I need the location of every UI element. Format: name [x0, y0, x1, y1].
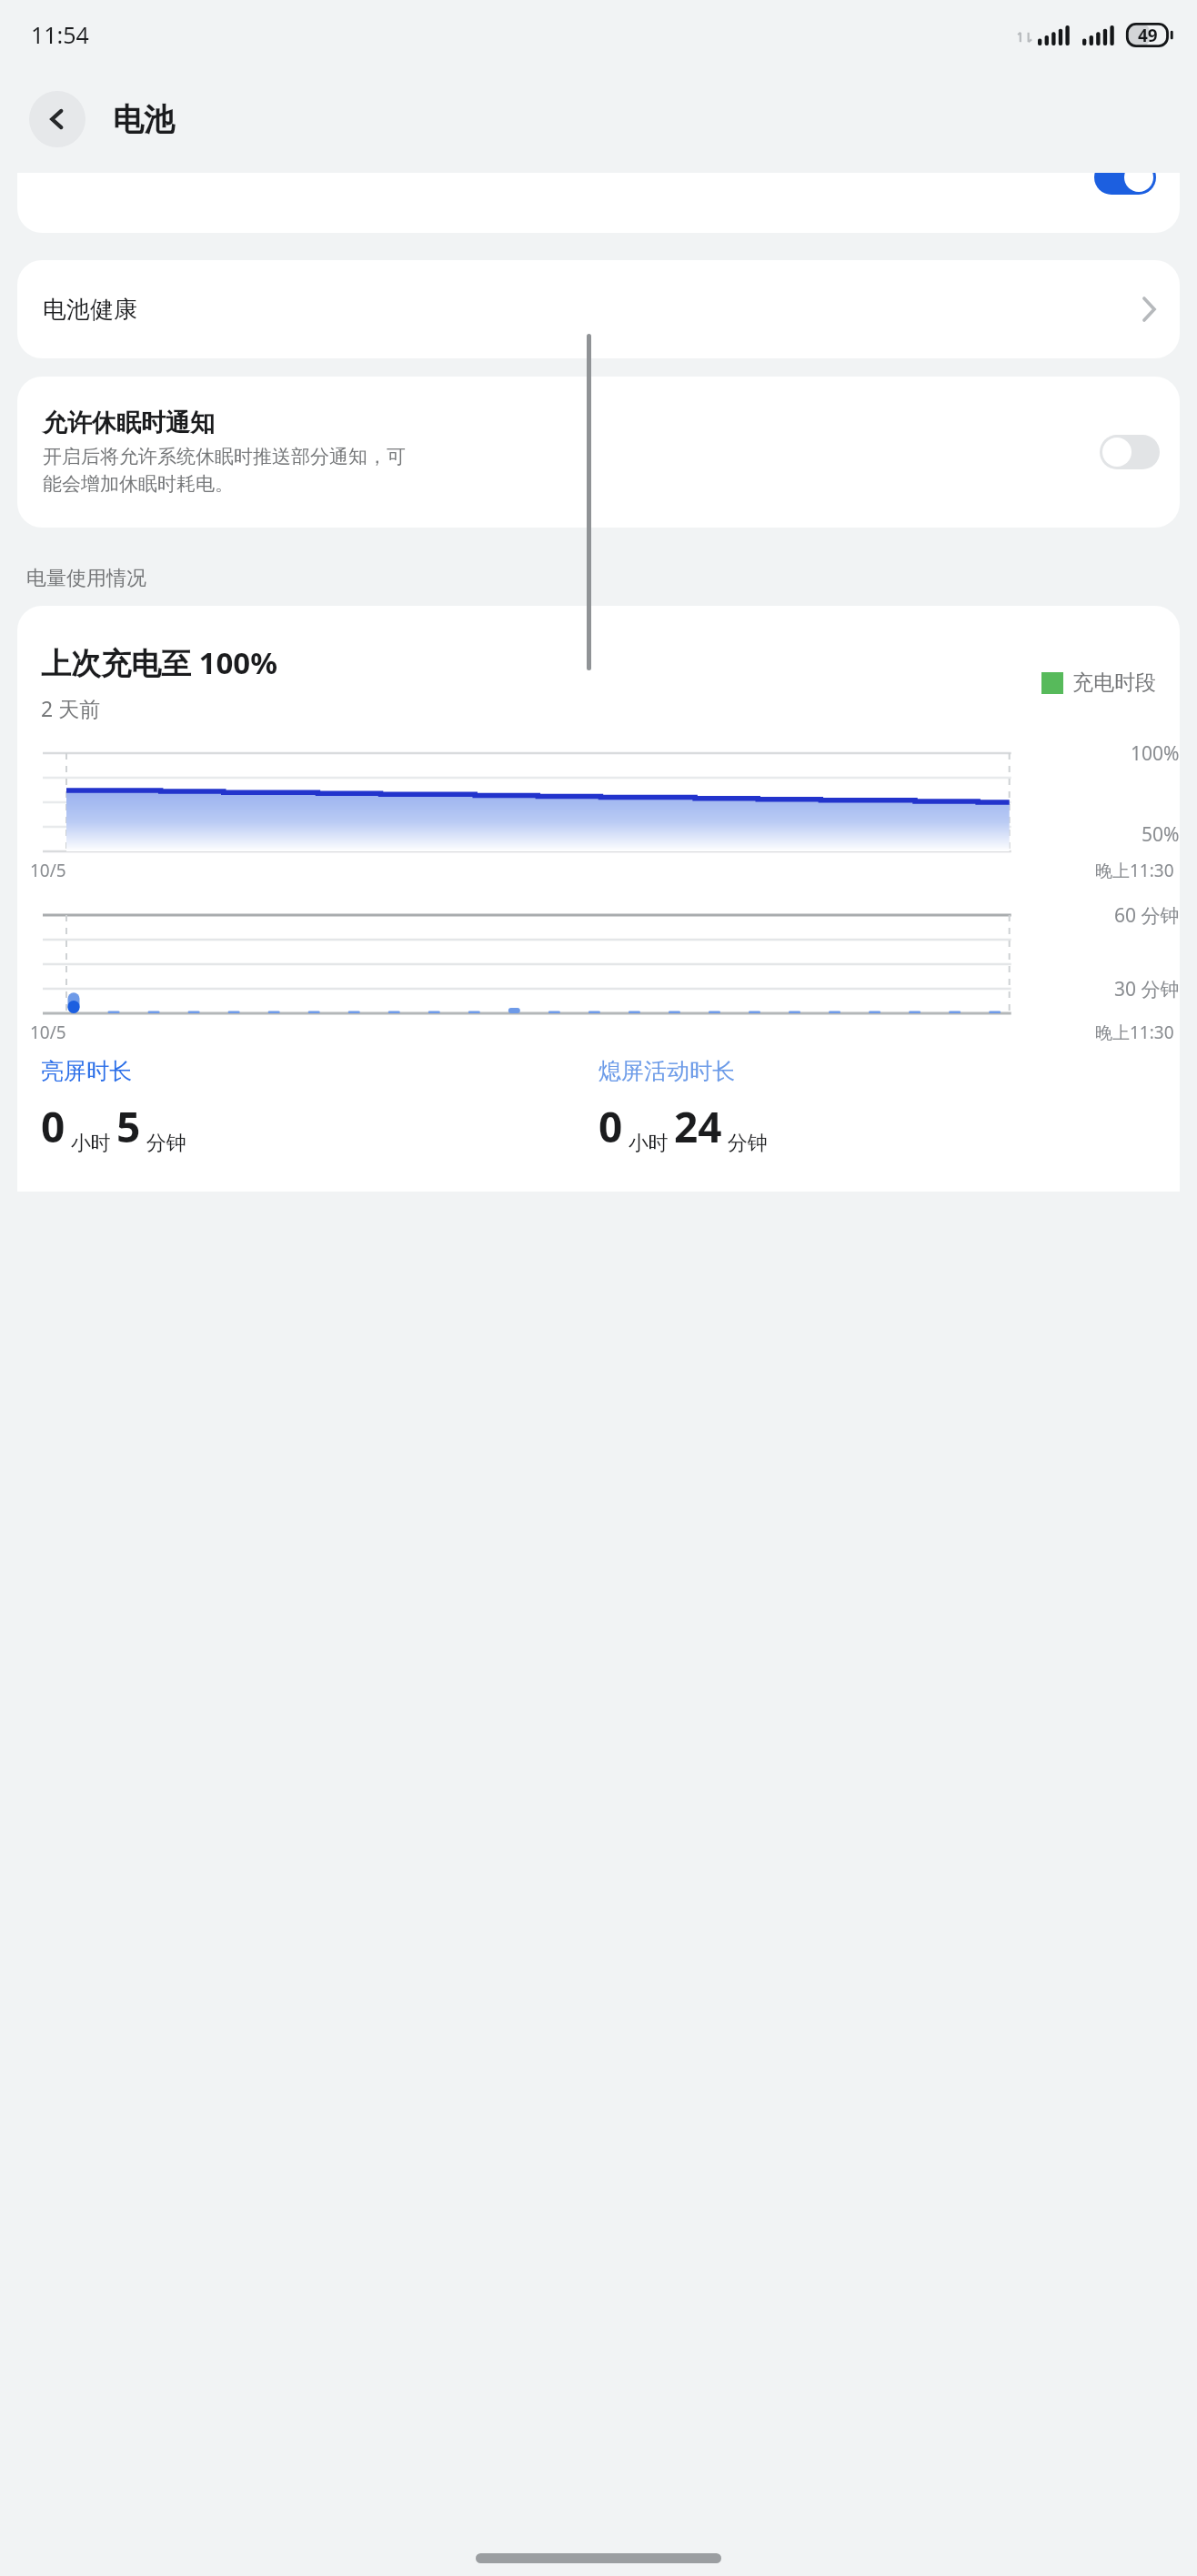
staticText: 电池 — [113, 100, 175, 139]
staticText: 晚上11:30 — [1095, 859, 1174, 882]
staticText: 10/5 — [30, 1021, 66, 1044]
staticText: 小时 — [623, 1128, 674, 1155]
staticText: 0 — [598, 1098, 623, 1155]
button[interactable] — [17, 173, 1180, 233]
staticText: 小时 — [65, 1128, 116, 1155]
button[interactable]: Toggle sleep notifications — [1100, 435, 1160, 469]
staticText: 2 天前 — [41, 694, 101, 722]
staticText: 60 分钟 — [1114, 902, 1180, 929]
button[interactable]: 亮屏时长 — [41, 1057, 132, 1085]
button[interactable]: 允许休眠时通知 — [17, 377, 1180, 528]
staticText: 49 — [1138, 24, 1158, 47]
staticText: 10/5 — [30, 859, 66, 882]
staticText: 11:54 — [31, 19, 89, 50]
staticText: 电池健康 — [43, 295, 137, 325]
button[interactable]: 电池健康 — [17, 260, 1180, 358]
staticText: 50% — [1142, 821, 1180, 848]
staticText: 30 分钟 — [1114, 976, 1180, 1002]
staticText: 电量使用情况 — [26, 566, 146, 591]
staticText: 0 — [41, 1098, 65, 1155]
staticText: 晚上11:30 — [1095, 1021, 1174, 1044]
staticText: 分钟 — [141, 1128, 186, 1155]
staticText: 分钟 — [722, 1128, 768, 1155]
staticText: 开启后将允许系统休眠时推送部分通知，可 能会增加休眠时耗电。 — [43, 445, 406, 497]
button[interactable]: 熄屏活动时长 — [598, 1057, 735, 1085]
staticText: 100% — [1131, 740, 1180, 767]
button[interactable]: Back — [29, 91, 85, 147]
staticText: 5 — [116, 1098, 141, 1155]
staticText: 充电时段 — [1072, 669, 1156, 696]
staticText: 上次充电至 100% — [41, 642, 277, 683]
staticText: 24 — [674, 1098, 722, 1155]
staticText: 允许休眠时通知 — [43, 408, 215, 438]
